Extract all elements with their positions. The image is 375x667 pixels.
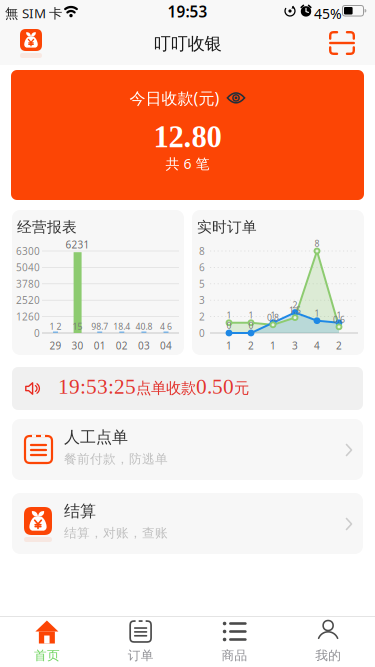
- staticText: 04: [160, 339, 172, 352]
- staticText: 人工点单: [64, 427, 128, 447]
- staticText: 经营报表: [17, 218, 77, 236]
- staticText: 1: [270, 339, 276, 352]
- staticText: 1: [336, 309, 341, 321]
- staticText: 1.5: [289, 304, 301, 316]
- button[interactable]: 19:53:25点单收款0.50元: [12, 367, 363, 410]
- staticText: 2: [292, 299, 297, 311]
- button[interactable]: 订单: [94, 618, 188, 664]
- staticText: 45%: [314, 4, 342, 23]
- staticText: 2: [248, 339, 254, 352]
- staticText: 0: [248, 320, 253, 331]
- staticText: 6231: [66, 238, 90, 251]
- staticText: 98.7: [91, 321, 108, 332]
- staticText: 订单: [128, 647, 154, 663]
- staticText: 18.4: [113, 321, 130, 332]
- staticText: 15: [73, 321, 83, 332]
- staticText: 1: [314, 307, 319, 319]
- staticText: 2: [199, 310, 205, 323]
- staticText: 首页: [34, 647, 60, 663]
- staticText: 01: [94, 339, 106, 352]
- button[interactable]: 首页: [0, 618, 94, 664]
- staticText: 1: [226, 309, 231, 321]
- staticText: 0.6: [333, 313, 345, 325]
- staticText: 1: [248, 309, 253, 321]
- staticText: 29: [49, 339, 61, 352]
- staticText: 3: [292, 339, 298, 352]
- staticText: 餐前付款，防逃单: [64, 451, 168, 467]
- staticText: 5: [199, 277, 205, 291]
- staticText: 0: [34, 326, 40, 340]
- staticText: 0: [199, 326, 205, 340]
- button[interactable]: 人工点单: [12, 419, 363, 480]
- staticText: 19:53:25点单收款0.50元: [58, 375, 249, 398]
- staticText: 3780: [16, 277, 40, 291]
- staticText: 实时订单: [197, 218, 257, 236]
- staticText: 5040: [16, 261, 40, 274]
- staticText: 8: [314, 238, 319, 249]
- staticText: 1: [270, 309, 275, 321]
- staticText: 4: [314, 339, 320, 352]
- staticText: 今日收款(元): [129, 87, 219, 109]
- staticText: 结算: [64, 501, 96, 521]
- staticText: 0: [226, 320, 231, 331]
- button[interactable]: 我的: [281, 618, 375, 664]
- staticText: 無 SIM 卡: [5, 4, 62, 22]
- staticText: 我的: [315, 647, 341, 663]
- button[interactable]: 显示/隐藏金额: [226, 92, 245, 104]
- staticText: 12.80: [153, 120, 221, 154]
- staticText: 商品: [221, 647, 247, 663]
- staticText: 4 6: [160, 321, 172, 332]
- staticText: 19:53: [167, 1, 207, 22]
- staticText: 8: [199, 244, 205, 258]
- staticText: 2520: [16, 293, 40, 307]
- button[interactable]: 扫一扫: [323, 25, 361, 61]
- button[interactable]: 商品: [187, 618, 281, 664]
- staticText: 6300: [16, 244, 40, 258]
- staticText: 1 2: [49, 321, 61, 332]
- staticText: 02: [116, 339, 128, 352]
- staticText: 1: [226, 339, 232, 352]
- staticText: 3: [199, 293, 205, 307]
- staticText: 03: [138, 339, 150, 352]
- staticText: 1260: [16, 310, 40, 323]
- staticText: 40.8: [135, 321, 152, 332]
- staticText: 结算，对账，查账: [64, 525, 168, 541]
- staticText: 叮叮收银: [153, 33, 221, 54]
- staticText: 共 6 笔: [165, 154, 209, 173]
- staticText: 2: [336, 339, 342, 352]
- staticText: 0.8: [267, 311, 279, 323]
- staticText: 30: [72, 339, 84, 352]
- button[interactable]: 结算: [12, 493, 363, 554]
- staticText: 6: [199, 261, 205, 274]
